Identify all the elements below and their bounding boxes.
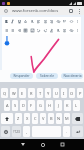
button[interactable]: S: [12, 100, 18, 111]
staticText: W: [12, 91, 16, 96]
staticText: E: [21, 91, 24, 96]
staticText: N: [57, 116, 61, 121]
button[interactable]: H: [46, 100, 53, 111]
button[interactable]: INDENT: [16, 27, 22, 33]
staticText: V: [42, 116, 45, 121]
button[interactable]: ITALIC: [9, 18, 15, 24]
staticText: H: [48, 103, 51, 108]
button[interactable]: K: [64, 100, 71, 111]
staticText: B: [50, 116, 53, 121]
staticText: L: [75, 103, 78, 108]
button[interactable]: Home: [37, 139, 48, 150]
button[interactable]: W: [10, 88, 17, 98]
button[interactable]: Back: [17, 139, 28, 150]
button[interactable]: ALIGNC: [61, 27, 67, 33]
button[interactable]: REDO: [42, 27, 48, 33]
button[interactable]: B: [48, 113, 54, 124]
button[interactable]: Enter: [72, 126, 83, 137]
button[interactable]: I: [61, 88, 67, 98]
staticText: O: [70, 91, 74, 96]
staticText: ?123: [13, 130, 20, 134]
button[interactable]: V: [40, 113, 46, 124]
button[interactable]: L: [73, 100, 80, 111]
staticText: C: [34, 116, 37, 121]
button[interactable]: TEXTCOL: [22, 18, 28, 24]
button[interactable]: HILITE: [29, 18, 35, 24]
button[interactable]: Y: [45, 88, 51, 98]
button[interactable]: J: [55, 100, 62, 111]
button[interactable]: F: [28, 100, 35, 111]
button[interactable]: Shift: [1, 113, 13, 124]
button[interactable]: E: [19, 88, 26, 98]
staticText: F: [30, 103, 33, 108]
staticText: G: [39, 103, 42, 108]
staticText: .: [66, 129, 68, 134]
button[interactable]: Responder: [10, 73, 33, 79]
button[interactable]: C: [32, 113, 38, 124]
button[interactable]: ALIGNC: [42, 18, 48, 24]
button[interactable]: G: [37, 100, 44, 111]
button[interactable]: CODE: [68, 18, 74, 24]
button[interactable]: IMG: [29, 27, 35, 33]
staticText: Z: [17, 116, 20, 121]
button[interactable]: M: [64, 113, 70, 124]
button[interactable]: ALIGNR: [48, 18, 54, 24]
staticText: Nao deveria: [63, 74, 82, 78]
button[interactable]: LINK: [68, 27, 74, 33]
button[interactable]: More options: [75, 7, 83, 15]
button[interactable]: D: [20, 100, 26, 111]
button[interactable]: TABLE: [22, 27, 28, 33]
staticText: U: [55, 91, 58, 96]
staticText: D: [22, 103, 25, 108]
button[interactable]: LISTN: [9, 27, 15, 33]
button[interactable]: Q: [1, 88, 8, 98]
staticText: ,: [26, 129, 28, 134]
button[interactable]: ,: [23, 126, 30, 137]
staticText: www.forsenb.com/docs: [12, 8, 59, 14]
staticText: K: [66, 103, 69, 108]
button[interactable]: LISTB: [3, 27, 9, 33]
button[interactable]: Emoji: [1, 126, 10, 137]
button[interactable]: QUOTE: [61, 18, 67, 24]
staticText: Sobre ele: [40, 74, 54, 78]
staticText: R: [30, 91, 33, 96]
button[interactable]: Site information: [2, 7, 10, 15]
button[interactable]: HILITE: [55, 27, 61, 33]
staticText: A: [6, 103, 9, 108]
button[interactable]: CLEAR: [48, 27, 54, 33]
button[interactable]: ?123: [12, 126, 21, 137]
button[interactable]: T: [37, 88, 43, 98]
button[interactable]: MORE: [74, 18, 80, 24]
button[interactable]: X: [24, 113, 30, 124]
button[interactable]: Tabs: [66, 6, 75, 15]
button[interactable]: P: [77, 88, 83, 98]
button[interactable]: O: [69, 88, 75, 98]
button[interactable]: Recent apps: [57, 139, 68, 150]
button[interactable]: N: [56, 113, 62, 124]
button[interactable]: .: [63, 126, 70, 137]
button[interactable]: R: [28, 88, 35, 98]
staticText: S: [14, 103, 17, 108]
button[interactable]: BOLD: [3, 18, 9, 24]
button[interactable]: UNDO: [35, 27, 41, 33]
button[interactable]: Nao deveria: [61, 73, 83, 79]
button[interactable]: U: [53, 88, 59, 98]
staticText: T: [39, 91, 42, 96]
staticText: P: [79, 91, 82, 96]
button[interactable]: Sobre ele: [36, 73, 58, 79]
staticText: M: [65, 116, 69, 121]
staticText: X: [26, 116, 29, 121]
staticText: Y: [47, 91, 50, 96]
staticText: J: [58, 103, 60, 108]
button[interactable]: MORE: [74, 27, 80, 33]
button[interactable]: Backspace: [72, 113, 83, 124]
button[interactable]: Z: [15, 113, 22, 124]
button[interactable]: UNDER: [16, 18, 22, 24]
staticText: I: [63, 91, 65, 96]
staticText: Q: [3, 91, 7, 96]
staticText: Responder: [13, 74, 30, 78]
button[interactable]: LINK: [55, 18, 61, 24]
button[interactable]: A: [4, 100, 10, 111]
button[interactable]: ALIGNL: [35, 18, 41, 24]
